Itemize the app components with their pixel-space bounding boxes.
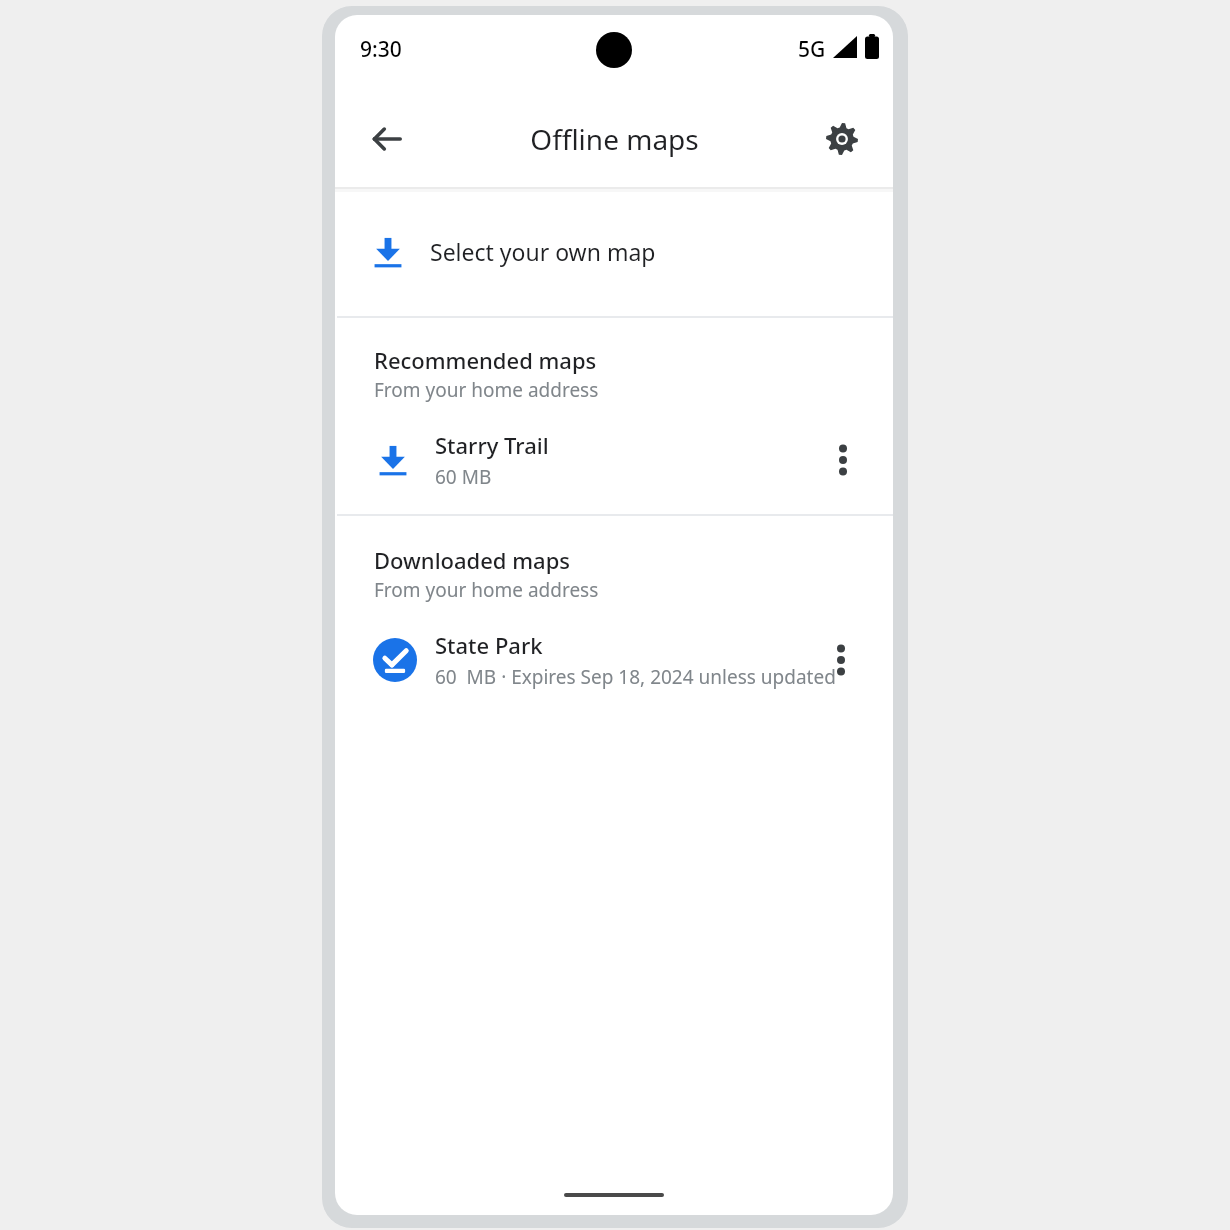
button[interactable]: Select your own map xyxy=(335,201,893,302)
staticText: Starry Trail xyxy=(435,430,549,460)
button[interactable]: More options for Starry Trail xyxy=(819,436,867,484)
staticText: 5G xyxy=(798,35,826,64)
staticText: Downloaded maps xyxy=(374,545,570,575)
button[interactable]: More options for State Park xyxy=(819,638,863,682)
staticText: From your home address xyxy=(374,577,599,603)
button[interactable]: Settings xyxy=(816,113,868,165)
staticText: 9:30 xyxy=(360,35,402,64)
button[interactable]: State Park xyxy=(335,615,893,705)
button[interactable]: Starry Trail xyxy=(335,415,893,505)
staticText: 60 MB xyxy=(435,464,492,490)
staticText: Offline maps xyxy=(530,120,699,158)
staticText: From your home address xyxy=(374,377,599,403)
staticText: 60 MB · Expires Sep 18, 2024 unless upda… xyxy=(435,664,836,690)
button[interactable]: Back xyxy=(361,113,413,165)
staticText: Select your own map xyxy=(430,236,656,267)
staticText: State Park xyxy=(435,630,543,660)
staticText: Recommended maps xyxy=(374,345,597,375)
